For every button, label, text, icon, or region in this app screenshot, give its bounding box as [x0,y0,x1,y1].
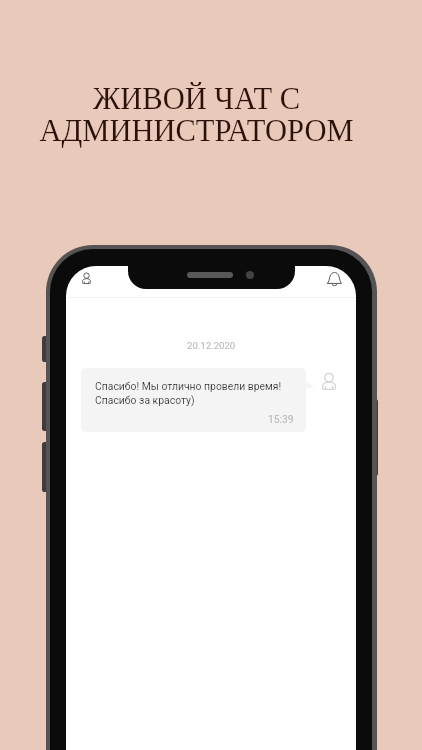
button[interactable]: Profile [66,266,106,296]
staticText: 15:39 [268,413,294,425]
button[interactable]: Notifications [315,266,355,296]
button[interactable]: Спасибо! Мы отлично провели время! Спаси… [81,368,306,432]
staticText: 20.12.2020 [187,340,236,351]
staticText: ЖИВОЙ ЧАТ С АДМИНИСТРАТОРОМ [39,82,354,148]
staticText: Спасибо! Мы отлично провели время! Спаси… [95,380,282,407]
